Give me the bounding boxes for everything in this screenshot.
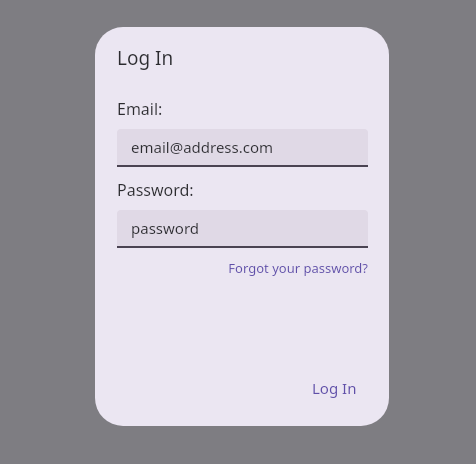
button[interactable]: password bbox=[117, 210, 368, 246]
button[interactable]: Forgot your password? bbox=[228, 259, 368, 277]
button[interactable]: Log In bbox=[308, 374, 361, 402]
staticText: Log In bbox=[117, 45, 174, 71]
staticText: Forgot your password? bbox=[228, 259, 368, 277]
staticText: password bbox=[131, 218, 199, 238]
button[interactable]: email@address.com bbox=[117, 129, 368, 165]
staticText: Log In bbox=[312, 378, 357, 398]
staticText: Email: bbox=[117, 98, 163, 120]
staticText: Password: bbox=[117, 179, 194, 201]
staticText: email@address.com bbox=[131, 137, 274, 157]
